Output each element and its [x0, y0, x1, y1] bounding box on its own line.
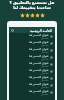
staticText: تفاصيل	[41, 72, 49, 75]
staticText: عنوان العنصر هنا	[29, 40, 49, 44]
button[interactable]: عنوان العنصر هنا	[9, 75, 55, 82]
staticText: عنوان العنصر هنا	[29, 61, 49, 65]
button[interactable]: Rate star	[35, 13, 40, 18]
button[interactable]: عنوان العنصر هنا	[9, 89, 55, 96]
button[interactable]: عنوان العنصر هنا	[9, 61, 55, 68]
staticText: تفاصيل	[41, 65, 49, 68]
staticText: تفاصيل	[41, 93, 49, 96]
button[interactable]: عنوان العنصر هنا	[9, 68, 55, 75]
staticText: ساعدنا بتقييمك لنا	[0, 5, 64, 11]
staticText: عنوان العنصر هنا	[29, 54, 49, 58]
staticText: تفاصيل	[41, 51, 49, 54]
staticText: تفاصيل	[41, 37, 49, 40]
button[interactable]: Rate star	[40, 13, 45, 18]
staticText: القائمة الرئيسية	[30, 28, 53, 33]
staticText: عنوان العنصر هنا	[29, 75, 49, 79]
button[interactable]: Search	[11, 29, 14, 32]
staticText: تفاصيل	[41, 44, 49, 47]
button[interactable]: عنوان العنصر هنا	[9, 33, 55, 40]
button[interactable]: عنوان العنصر هنا	[9, 82, 55, 89]
staticText: تفاصيل	[41, 86, 49, 89]
staticText: هل تستمتع بالتطبيق ؟	[0, 0, 64, 6]
button[interactable]: عنوان العنصر هنا	[9, 54, 55, 61]
staticText: عنوان العنصر هنا	[29, 89, 49, 93]
button[interactable]: عنوان العنصر هنا	[9, 40, 55, 47]
staticText: عنوان العنصر هنا	[29, 82, 49, 86]
staticText: عنوان العنصر هنا	[29, 47, 49, 51]
button[interactable]: Rate star	[20, 13, 25, 18]
staticText: عنوان العنصر هنا	[29, 68, 49, 72]
staticText: عنوان العنصر هنا	[29, 33, 49, 37]
staticText: تفاصيل	[41, 79, 49, 82]
button[interactable]: Rate star	[30, 13, 35, 18]
staticText: تفاصيل	[41, 58, 49, 61]
button[interactable]: Rate star	[25, 13, 30, 18]
button[interactable]: عنوان العنصر هنا	[9, 47, 55, 54]
